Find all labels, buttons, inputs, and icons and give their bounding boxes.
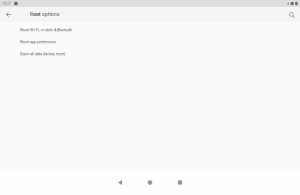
- staticText: Reset options: [30, 12, 59, 17]
- button[interactable]: Reset Wi-Fi, mobile & Bluetooth: [0, 24, 300, 36]
- button[interactable]: Navigate up: [0, 7, 18, 22]
- button[interactable]: Home: [135, 170, 165, 195]
- staticText: Reset app preferences: [20, 39, 56, 44]
- button[interactable]: Recent apps: [165, 170, 195, 195]
- button[interactable]: Erase all data (factory reset): [0, 48, 300, 60]
- staticText: Erase all data (factory reset): [20, 51, 65, 56]
- button[interactable]: Reset app preferences: [0, 36, 300, 48]
- staticText: 14:27: [2, 1, 11, 6]
- button[interactable]: Search: [283, 7, 300, 22]
- button[interactable]: Back: [105, 170, 135, 195]
- staticText: Reset Wi-Fi, mobile & Bluetooth: [20, 27, 72, 32]
